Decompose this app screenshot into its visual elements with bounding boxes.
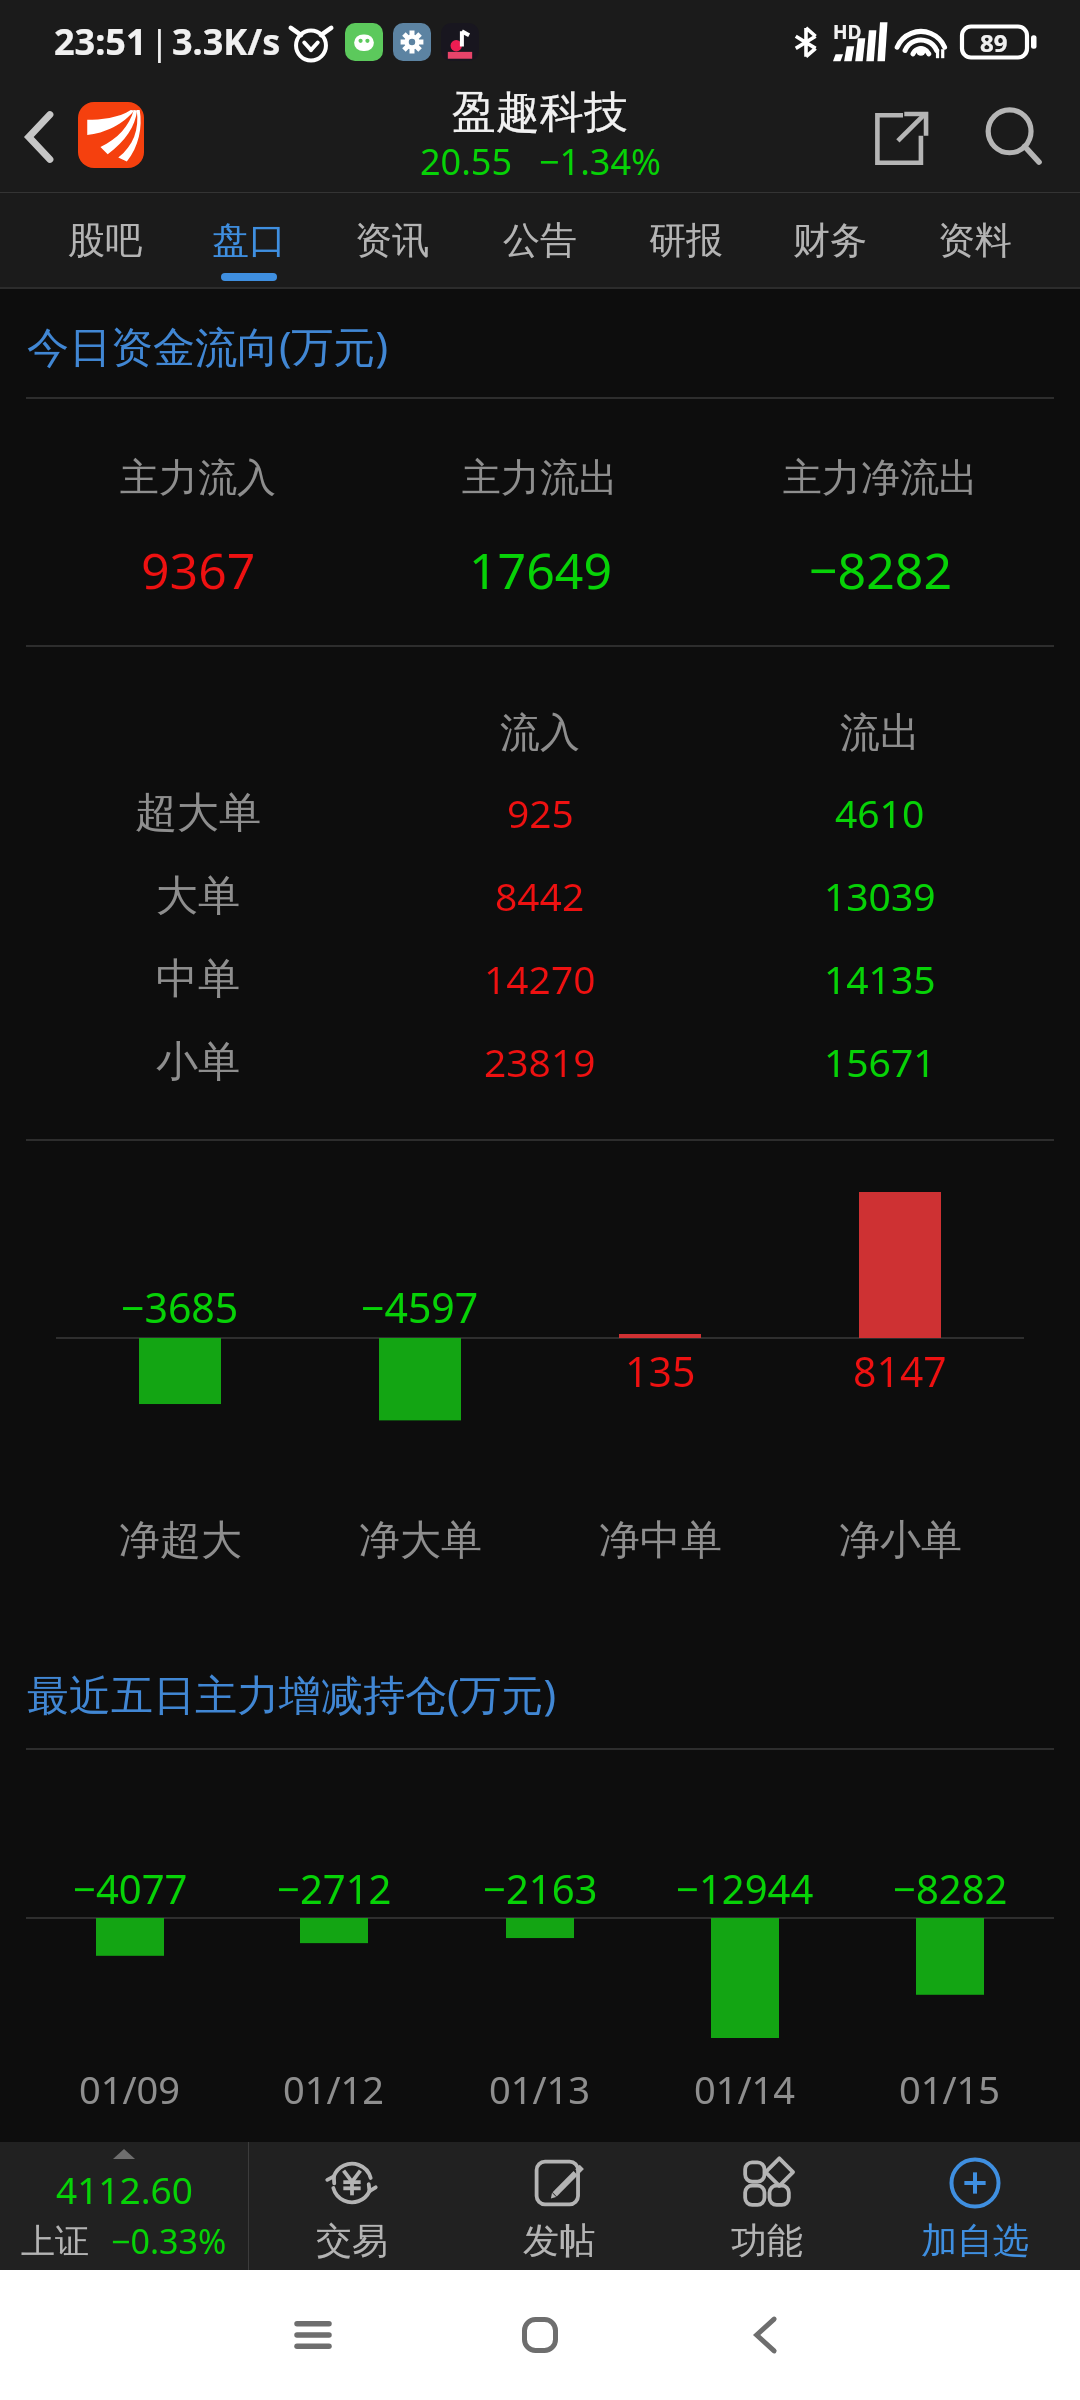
- staticText: 23819: [484, 1035, 596, 1088]
- staticText: 资料: [938, 217, 1012, 264]
- staticText: 流入: [500, 707, 580, 757]
- staticText: 8147: [853, 1343, 947, 1399]
- staticText: −8282: [893, 1861, 1008, 1915]
- button[interactable]: 资料: [905, 193, 1045, 287]
- staticText: 小单: [156, 1036, 240, 1089]
- button[interactable]: Functions: [663, 2142, 871, 2270]
- staticText: 23:51: [54, 17, 147, 66]
- staticText: 净超大: [119, 1515, 242, 1567]
- staticText: 净小单: [839, 1515, 962, 1567]
- staticText: 研报: [649, 217, 723, 264]
- staticText: 盈趣科技: [452, 85, 628, 140]
- staticText: −4597: [361, 1279, 479, 1335]
- button[interactable]: Recents: [268, 2270, 358, 2400]
- staticText: 8442: [495, 869, 585, 922]
- button[interactable]: Trade: [248, 2142, 456, 2270]
- other: Trade: [324, 2155, 380, 2211]
- staticText: 主力流出: [462, 453, 618, 502]
- staticText: 13039: [824, 869, 936, 922]
- button[interactable]: Back: [0, 85, 78, 192]
- staticText: 资讯: [355, 217, 429, 264]
- button[interactable]: 盘口: [179, 193, 319, 287]
- staticText: −4077: [73, 1861, 188, 1915]
- staticText: 9367: [141, 536, 256, 604]
- button[interactable]: 研报: [616, 193, 756, 287]
- staticText: 功能: [731, 2218, 803, 2263]
- staticText: −0.33%: [111, 2218, 227, 2264]
- staticText: |: [150, 19, 169, 65]
- staticText: −2712: [277, 1861, 392, 1915]
- staticText: 加自选: [921, 2218, 1029, 2263]
- staticText: 3.3K/s: [172, 17, 281, 66]
- button[interactable]: Search: [962, 85, 1062, 192]
- staticText: −8282: [809, 536, 952, 604]
- staticText: 流出: [840, 707, 920, 757]
- staticText: 公告: [503, 217, 577, 264]
- button[interactable]: Share: [844, 85, 962, 192]
- staticText: 14135: [824, 952, 936, 1005]
- staticText: 925: [507, 786, 574, 839]
- button[interactable]: Add to watchlist: [871, 2142, 1079, 2270]
- staticText: −2163: [483, 1861, 598, 1915]
- staticText: 20.55: [420, 137, 513, 185]
- button[interactable]: 资讯: [322, 193, 462, 287]
- staticText: 01/09: [79, 2063, 181, 2115]
- button[interactable]: 4112.60: [0, 2142, 248, 2270]
- staticText: −1.34%: [539, 137, 661, 185]
- staticText: HD: [833, 19, 862, 45]
- staticText: 17649: [469, 536, 612, 604]
- button[interactable]: Post: [455, 2142, 663, 2270]
- staticText: 01/15: [899, 2063, 1001, 2115]
- staticText: 财务: [793, 217, 867, 264]
- other: Add to watchlist: [947, 2155, 1003, 2211]
- staticText: 净中单: [599, 1515, 722, 1567]
- button[interactable]: App home: [78, 102, 144, 168]
- staticText: 15671: [824, 1035, 936, 1088]
- staticText: 最近五日主力增减持仓(万元): [27, 1665, 557, 1722]
- staticText: 01/14: [694, 2063, 796, 2115]
- staticText: 盘口: [212, 217, 286, 264]
- staticText: −12944: [676, 1861, 814, 1915]
- staticText: 89: [980, 26, 1008, 59]
- button[interactable]: Back: [720, 2270, 810, 2400]
- button[interactable]: 公告: [470, 193, 610, 287]
- other: Functions: [739, 2155, 795, 2211]
- staticText: 4112.60: [56, 2164, 193, 2214]
- staticText: 今日资金流向(万元): [27, 317, 389, 374]
- staticText: 股吧: [68, 217, 142, 264]
- staticText: 交易: [316, 2218, 388, 2263]
- staticText: 中单: [156, 953, 240, 1006]
- staticText: 上证: [21, 2220, 89, 2263]
- staticText: 净大单: [359, 1515, 482, 1567]
- staticText: 4610: [835, 786, 925, 839]
- staticText: −3685: [121, 1279, 239, 1335]
- button[interactable]: Home: [495, 2270, 585, 2400]
- staticText: 01/12: [283, 2063, 385, 2115]
- staticText: 135: [625, 1343, 696, 1399]
- button[interactable]: 财务: [760, 193, 900, 287]
- staticText: 主力流入: [120, 453, 276, 502]
- staticText: 14270: [484, 952, 596, 1005]
- staticText: 大单: [156, 870, 240, 923]
- staticText: 01/13: [489, 2063, 591, 2115]
- staticText: 发帖: [523, 2218, 595, 2263]
- other: Post: [531, 2155, 587, 2211]
- button[interactable]: 股吧: [35, 193, 175, 287]
- staticText: 主力净流出: [783, 453, 978, 502]
- staticText: 超大单: [135, 787, 261, 840]
